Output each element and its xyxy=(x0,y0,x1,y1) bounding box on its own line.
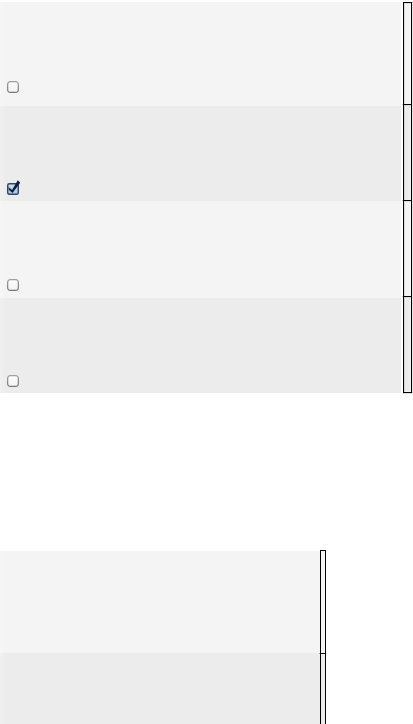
button[interactable]: Answer 2 xyxy=(403,104,412,200)
button[interactable]: Unselected answer xyxy=(0,2,401,106)
button[interactable]: Unselected answer xyxy=(7,373,21,387)
button[interactable]: Answer 6 xyxy=(320,653,327,724)
button[interactable]: Answer 3 xyxy=(403,200,412,296)
button[interactable]: Unselected answer xyxy=(0,298,401,393)
button[interactable]: Answer 5 xyxy=(320,550,327,653)
button[interactable]: Unselected answer xyxy=(7,79,21,93)
button[interactable]: Answer 4 xyxy=(403,296,412,392)
button[interactable]: Unselected answer xyxy=(0,201,401,298)
button[interactable]: Selected answer xyxy=(7,181,21,195)
button[interactable]: Selected answer xyxy=(0,106,401,201)
button[interactable]: Answer 1 xyxy=(403,2,412,105)
button[interactable]: Unselected answer xyxy=(7,277,21,291)
